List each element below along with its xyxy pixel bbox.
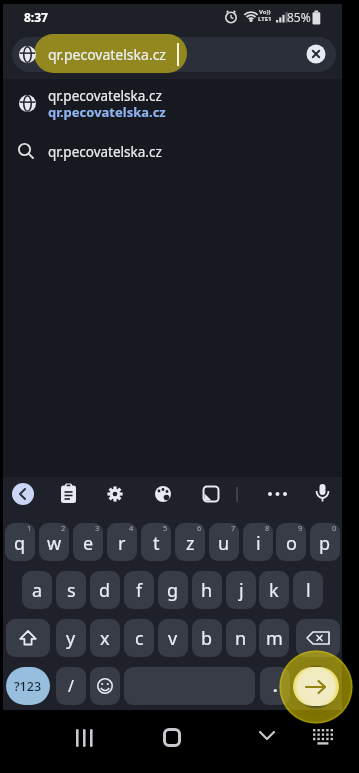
button[interactable]: r: [107, 523, 137, 561]
staticText: 4: [129, 523, 134, 533]
staticText: 3: [95, 523, 100, 533]
button[interactable]: [70, 724, 102, 752]
button[interactable]: x: [90, 619, 120, 657]
button[interactable]: m: [259, 619, 289, 657]
staticText: 8: [265, 523, 270, 533]
staticText: c: [135, 626, 144, 651]
staticText: t: [153, 531, 160, 556]
staticText: 8:37: [24, 9, 48, 25]
button[interactable]: [311, 726, 335, 750]
staticText: qr.pecovatelska.cz: [48, 45, 166, 64]
button[interactable]: h: [192, 571, 222, 609]
staticText: 7: [231, 523, 236, 533]
button[interactable]: ?123: [6, 667, 50, 705]
button[interactable]: [58, 483, 79, 505]
staticText: u: [218, 531, 230, 556]
button[interactable]: [293, 667, 339, 706]
button[interactable]: t: [141, 523, 171, 561]
staticText: LTE1: [258, 15, 272, 23]
button[interactable]: i: [243, 523, 273, 561]
button[interactable]: [153, 484, 173, 504]
staticText: 9: [298, 523, 303, 533]
staticText: 5: [163, 523, 168, 533]
button[interactable]: k: [259, 571, 289, 609]
staticText: z: [186, 531, 195, 556]
staticText: qr.pecovatelska.cz: [48, 87, 162, 105]
button[interactable]: [303, 41, 329, 67]
button[interactable]: p: [310, 523, 340, 561]
button[interactable]: [12, 37, 336, 72]
button[interactable]: f: [124, 571, 154, 609]
button[interactable]: q: [5, 523, 35, 561]
staticText: q: [14, 531, 26, 556]
staticText: f: [136, 578, 143, 603]
button[interactable]: s: [56, 571, 86, 609]
button[interactable]: [3, 84, 342, 124]
staticText: o: [286, 531, 297, 556]
staticText: 6: [197, 523, 202, 533]
staticText: v: [168, 626, 178, 651]
button[interactable]: u: [209, 523, 239, 561]
button[interactable]: l: [293, 571, 323, 609]
button[interactable]: a: [22, 571, 52, 609]
staticText: 0: [332, 523, 337, 533]
button[interactable]: j: [226, 571, 256, 609]
button[interactable]: n: [226, 619, 256, 657]
staticText: y: [66, 626, 76, 651]
staticText: 1: [27, 523, 32, 533]
staticText: qr.pecovatelska.cz: [48, 143, 162, 161]
staticText: ?123: [14, 678, 42, 695]
staticText: m: [266, 626, 283, 651]
button[interactable]: y: [56, 619, 86, 657]
staticText: i: [256, 531, 261, 556]
button[interactable]: [255, 724, 279, 746]
button[interactable]: v: [158, 619, 188, 657]
button[interactable]: c: [124, 619, 154, 657]
button[interactable]: [12, 483, 34, 505]
button[interactable]: [90, 667, 120, 705]
staticText: d: [99, 578, 111, 603]
button[interactable]: e: [73, 523, 103, 561]
staticText: /: [68, 675, 74, 697]
staticText: r: [118, 531, 126, 556]
staticText: b: [201, 626, 213, 651]
button[interactable]: [124, 667, 255, 705]
button[interactable]: [314, 483, 331, 505]
staticText: k: [269, 578, 279, 603]
button[interactable]: /: [56, 667, 86, 705]
button[interactable]: z: [175, 523, 205, 561]
staticText: e: [83, 531, 94, 556]
button[interactable]: .: [260, 667, 290, 705]
staticText: a: [32, 578, 43, 603]
staticText: 2: [61, 523, 66, 533]
button[interactable]: g: [158, 571, 188, 609]
button[interactable]: b: [192, 619, 222, 657]
staticText: h: [201, 578, 213, 603]
button[interactable]: [266, 489, 290, 499]
staticText: w: [47, 531, 62, 556]
button[interactable]: [296, 619, 340, 657]
staticText: Vo)): [259, 8, 271, 16]
button[interactable]: w: [39, 523, 69, 561]
staticText: qr.pecovatelska.cz: [48, 103, 166, 121]
staticText: p: [319, 531, 331, 556]
button[interactable]: d: [90, 571, 120, 609]
staticText: n: [235, 626, 247, 651]
staticText: 85%: [287, 9, 311, 25]
staticText: x: [100, 626, 110, 651]
staticText: l: [306, 578, 311, 603]
staticText: j: [239, 578, 244, 603]
staticText: s: [67, 578, 76, 603]
staticText: .: [273, 675, 278, 697]
button[interactable]: o: [276, 523, 306, 561]
button[interactable]: [6, 619, 50, 657]
button[interactable]: [163, 728, 181, 747]
button[interactable]: [3, 138, 342, 166]
button[interactable]: [105, 484, 125, 504]
staticText: g: [167, 578, 179, 603]
button[interactable]: [202, 485, 220, 503]
